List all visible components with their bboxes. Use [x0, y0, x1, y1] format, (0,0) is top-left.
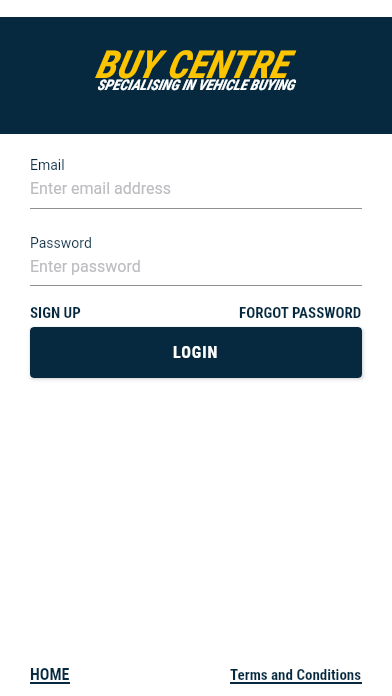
staticText: HOME: [30, 665, 70, 684]
button[interactable]: SIGN UP: [30, 304, 81, 322]
staticText: Password: [30, 235, 92, 251]
button[interactable]: FORGOT PASSWORD: [239, 304, 362, 322]
button[interactable]: Enter email address: [30, 179, 362, 198]
staticText: Email: [30, 157, 65, 173]
staticText: Terms and Conditions: [230, 666, 362, 684]
staticText: BUY CENTRE: [95, 42, 288, 87]
staticText: SPECIALISING IN VEHICLE BUYING: [97, 77, 295, 94]
button[interactable]: Enter password: [30, 257, 362, 276]
staticText: LOGIN: [173, 343, 219, 362]
button[interactable]: HOME: [30, 665, 70, 686]
button[interactable]: LOGIN: [30, 327, 362, 378]
button[interactable]: Terms and Conditions: [230, 666, 362, 686]
